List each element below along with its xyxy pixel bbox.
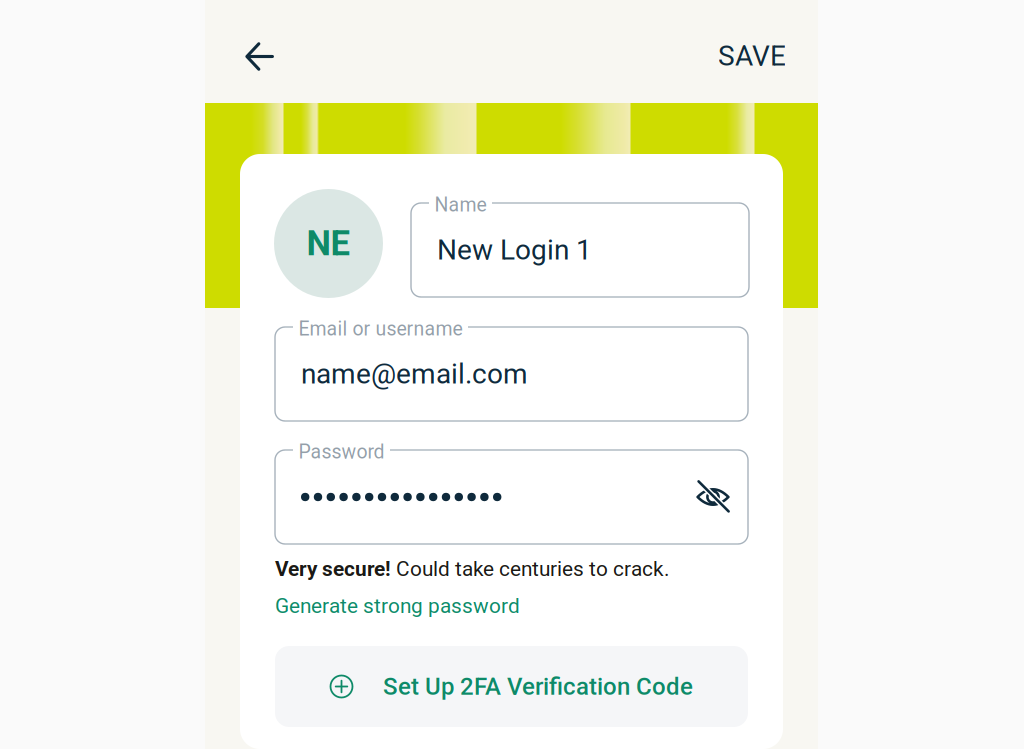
staticText: Email or username — [298, 317, 462, 340]
staticText: Password — [298, 440, 384, 463]
staticText: Set Up 2FA Verification Code — [383, 672, 693, 700]
button[interactable]: SAVE — [708, 30, 786, 82]
button[interactable]: Generate strong password — [275, 592, 748, 620]
button[interactable]: Set Up 2FA Verification Code — [275, 646, 748, 727]
staticText: SAVE — [718, 40, 786, 72]
button[interactable]: Show password — [696, 480, 730, 514]
staticText: New Login 1 — [437, 234, 592, 266]
staticText: Generate strong password — [275, 594, 520, 618]
staticText: Very secure! Could take centuries to cra… — [275, 557, 669, 581]
staticText: Name — [434, 193, 486, 216]
button[interactable]: Back — [233, 30, 286, 83]
staticText: name@email.com — [301, 358, 528, 390]
staticText: NE — [306, 223, 350, 264]
